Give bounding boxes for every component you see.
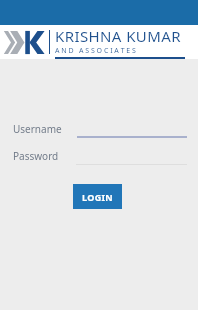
button[interactable]: Username input field — [77, 120, 187, 138]
staticText: KRISHNA KUMAR — [55, 26, 181, 46]
staticText: LOGIN — [82, 191, 113, 203]
other: Krishna Kumar and Associates logo — [3, 28, 45, 57]
button[interactable]: LOGIN — [73, 184, 122, 209]
button[interactable]: Password input field — [76, 147, 187, 165]
staticText: A N D A S S O C I A T E S — [55, 46, 136, 56]
staticText: Password — [13, 149, 59, 163]
staticText: Username — [13, 122, 62, 136]
